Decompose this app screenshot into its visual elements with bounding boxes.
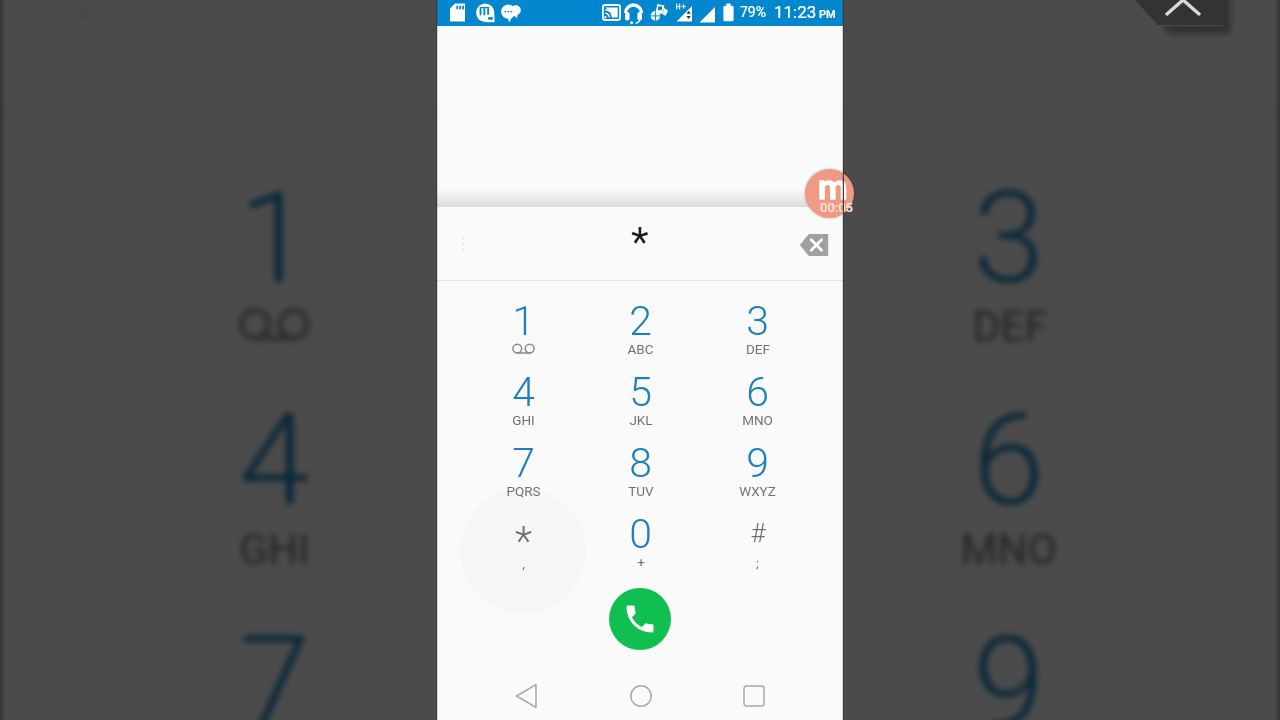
staticText: 00:05 [820, 200, 854, 215]
staticText: 1 [512, 297, 535, 345]
staticText: PM [819, 8, 836, 21]
button[interactable]: Back [470, 672, 584, 720]
staticText: GHI [238, 523, 311, 573]
staticText: 5 [629, 368, 652, 416]
staticText: 7 [238, 608, 311, 720]
staticText: PQRS [506, 483, 541, 499]
staticText: JKL [629, 412, 653, 428]
button[interactable]: 7 [464, 442, 582, 513]
staticText: 9 [746, 439, 769, 487]
staticText: * [515, 518, 532, 565]
staticText: GHI [512, 412, 535, 428]
staticText: WXYZ [739, 483, 776, 499]
button[interactable]: 9 [825, 617, 1192, 720]
button[interactable]: Backspace [1117, 0, 1280, 81]
staticText: 3 [746, 297, 769, 345]
button[interactable]: Collapse [1130, 0, 1230, 32]
staticText: 3 [972, 162, 1045, 313]
staticText: ABC [599, 300, 684, 351]
button[interactable]: 3 [699, 300, 816, 371]
staticText: 5 [605, 385, 678, 536]
staticText: + [637, 554, 645, 570]
button[interactable]: 1 [88, 172, 458, 394]
button[interactable]: 0 [582, 513, 699, 584]
staticText: 6 [972, 385, 1045, 536]
button[interactable]: 5 [458, 394, 825, 617]
staticText: 0 [629, 510, 652, 558]
button[interactable]: 4 [464, 371, 582, 442]
button[interactable]: 3 [825, 172, 1192, 394]
button[interactable]: 5 [582, 371, 699, 442]
staticText: DEF [972, 300, 1048, 351]
button[interactable]: * [464, 513, 582, 584]
button[interactable]: Call [609, 588, 671, 650]
staticText: ; [756, 555, 759, 571]
staticText: 1 [238, 162, 311, 313]
staticText: 4 [238, 385, 311, 536]
staticText: # [750, 518, 766, 548]
button[interactable]: Backspace [792, 219, 844, 271]
staticText: 8 [629, 439, 652, 487]
staticText: ABC [627, 341, 654, 357]
button[interactable]: 6 [699, 371, 816, 442]
button[interactable]: 6 [825, 394, 1192, 617]
staticText: JKL [605, 523, 681, 573]
button[interactable]: More options [436, 219, 486, 269]
staticText: MNO [742, 412, 773, 428]
button[interactable]: 1 [464, 300, 582, 371]
button[interactable]: 2 [582, 300, 699, 371]
staticText: * [612, 0, 668, 65]
staticText: * [631, 218, 649, 266]
staticText: 11:23 [774, 2, 817, 22]
button[interactable]: 7 [88, 617, 458, 720]
staticText: m [818, 167, 848, 207]
staticText: , [522, 555, 525, 571]
staticText: TUV [628, 483, 654, 499]
staticText: 2 [629, 297, 652, 345]
staticText: 4 [512, 368, 535, 416]
staticText: 6 [746, 368, 769, 416]
staticText: 79% [740, 4, 766, 20]
button[interactable]: Home [584, 672, 697, 720]
button[interactable]: Recent apps [697, 672, 810, 720]
staticText: 8 [605, 608, 678, 720]
button[interactable]: # [699, 513, 816, 584]
staticText: 9 [972, 608, 1045, 720]
staticText: DEF [746, 341, 770, 357]
staticText: 2 [605, 162, 678, 313]
button[interactable]: 8 [582, 442, 699, 513]
button[interactable]: 8 [458, 617, 825, 720]
button[interactable]: 2 [458, 172, 825, 394]
button[interactable]: 9 [699, 442, 816, 513]
button[interactable]: 4 [88, 394, 458, 617]
staticText: 7 [512, 439, 535, 487]
staticText: MNO [960, 523, 1057, 573]
